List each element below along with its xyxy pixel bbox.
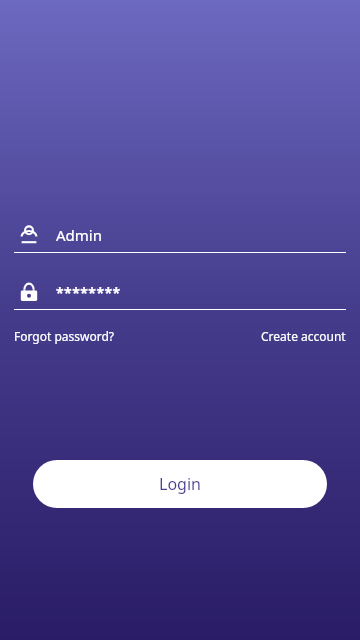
staticText: Login xyxy=(159,473,201,495)
button[interactable]: ******** xyxy=(14,275,346,309)
button[interactable]: Login xyxy=(33,460,327,508)
staticText: Admin xyxy=(56,225,102,245)
staticText: Forgot password? xyxy=(14,328,115,344)
staticText: ******** xyxy=(56,283,121,302)
button[interactable]: Forgot password? xyxy=(14,325,115,347)
staticText: Create account xyxy=(261,328,346,344)
button[interactable]: Create account xyxy=(261,325,346,347)
button[interactable]: Admin xyxy=(14,218,346,252)
